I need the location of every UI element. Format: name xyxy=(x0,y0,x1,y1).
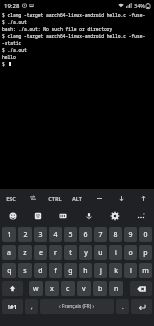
button[interactable]: a xyxy=(2,245,16,260)
button[interactable]: d xyxy=(34,263,47,278)
button[interactable]: l xyxy=(124,263,137,278)
staticText: g xyxy=(68,266,73,276)
staticText: $ clang -target aarch64-linux-android he… xyxy=(2,33,153,39)
button[interactable]: c xyxy=(61,281,75,296)
button[interactable]: 7 xyxy=(94,227,107,242)
button[interactable]: k xyxy=(109,263,122,278)
staticText: bash: ./a.out: No such file or directory xyxy=(2,26,113,32)
button[interactable]: 1 xyxy=(2,227,16,242)
staticText: ALT xyxy=(72,195,82,202)
button[interactable]: v xyxy=(77,281,91,296)
staticText: 19:28 xyxy=(4,2,20,10)
staticText: h xyxy=(83,266,88,276)
staticText: b xyxy=(98,284,103,294)
staticText: t xyxy=(69,248,72,258)
button[interactable]: Backspace xyxy=(130,281,152,296)
button[interactable]: 9 xyxy=(124,227,137,242)
staticText: 4 xyxy=(53,230,58,240)
button[interactable]: 8 xyxy=(109,227,122,242)
button[interactable]: b xyxy=(93,281,107,296)
button[interactable]: t xyxy=(64,245,77,260)
button[interactable]: g xyxy=(64,263,77,278)
button[interactable]: j xyxy=(94,263,107,278)
button[interactable]: — xyxy=(88,189,110,207)
staticText: y xyxy=(84,248,88,258)
button[interactable]: 4 xyxy=(49,227,62,242)
staticText: m xyxy=(142,266,149,276)
staticText: e xyxy=(39,248,43,258)
button[interactable]: h xyxy=(79,263,92,278)
button[interactable]: 2 xyxy=(18,227,32,242)
staticText: i xyxy=(115,248,117,258)
button[interactable]: ESC xyxy=(0,189,22,207)
staticText: k xyxy=(114,266,118,276)
button[interactable]: , xyxy=(25,299,38,314)
button[interactable]: Shift xyxy=(2,281,23,296)
staticText: $ clang -target aarch64-linux-android he… xyxy=(2,12,153,18)
staticText: a xyxy=(7,248,11,258)
staticText: 2 xyxy=(23,230,28,240)
button[interactable]: s xyxy=(18,263,32,278)
button[interactable]: e xyxy=(34,245,47,260)
staticText: 8 xyxy=(113,230,118,240)
button[interactable]: Voice input xyxy=(76,207,102,225)
button[interactable]: 0 xyxy=(139,227,152,242)
button[interactable]: f xyxy=(49,263,62,278)
button[interactable]: GIF xyxy=(50,207,76,225)
staticText: o xyxy=(128,248,133,258)
staticText: 6 xyxy=(83,230,88,240)
staticText: 7 xyxy=(98,230,103,240)
button[interactable]: More options xyxy=(128,207,154,225)
staticText: 1 xyxy=(7,230,12,240)
button[interactable]: ALT xyxy=(66,189,88,207)
button[interactable]: o xyxy=(124,245,137,260)
staticText: q xyxy=(7,266,12,276)
staticText: $ xyxy=(2,61,8,67)
button[interactable]: TAB xyxy=(22,189,44,207)
staticText: CTRL xyxy=(48,195,62,202)
staticText: n xyxy=(114,284,119,294)
button[interactable]: r xyxy=(49,245,62,260)
staticText: $ ./a.out xyxy=(2,19,27,25)
button[interactable]: n xyxy=(109,281,123,296)
staticText: r xyxy=(54,248,57,258)
button[interactable]: z xyxy=(18,245,32,260)
button[interactable]: . xyxy=(116,299,129,314)
button[interactable]: Stickers xyxy=(25,207,50,225)
button[interactable]: p xyxy=(139,245,152,260)
staticText: z xyxy=(23,248,27,258)
staticText: c xyxy=(66,284,70,294)
button[interactable]: CTRL xyxy=(44,189,66,207)
staticText: 5 xyxy=(68,230,73,240)
button[interactable]: w xyxy=(29,281,43,296)
staticText: ‹ Français (FR) › xyxy=(59,303,95,310)
button[interactable]: 3 xyxy=(34,227,47,242)
button[interactable]: Enter xyxy=(131,299,152,314)
button[interactable]: ↓ xyxy=(110,189,132,207)
staticText: s xyxy=(23,266,27,276)
staticText: 3 xyxy=(38,230,43,240)
staticText: w xyxy=(33,284,39,294)
button[interactable]: x xyxy=(45,281,59,296)
button[interactable]: i xyxy=(109,245,122,260)
button[interactable]: u xyxy=(94,245,107,260)
staticText: , xyxy=(31,303,33,311)
staticText: 9 xyxy=(128,230,133,240)
button[interactable]: q xyxy=(2,263,16,278)
button[interactable]: y xyxy=(79,245,92,260)
staticText: l xyxy=(130,266,132,276)
button[interactable]: Space xyxy=(40,299,114,314)
staticText: 34% xyxy=(134,2,145,9)
staticText: . xyxy=(122,303,124,311)
button[interactable]: 5 xyxy=(64,227,77,242)
button[interactable]: Settings xyxy=(102,207,128,225)
button[interactable]: !#1 xyxy=(2,299,23,314)
staticText: x xyxy=(50,284,54,294)
button[interactable]: ↑ xyxy=(132,189,154,207)
staticText: -static xyxy=(2,40,22,46)
staticText: v xyxy=(82,284,86,294)
button[interactable]: m xyxy=(139,263,152,278)
button[interactable]: Emoji xyxy=(0,207,25,225)
button[interactable]: 6 xyxy=(79,227,92,242)
staticText: j xyxy=(100,266,102,276)
